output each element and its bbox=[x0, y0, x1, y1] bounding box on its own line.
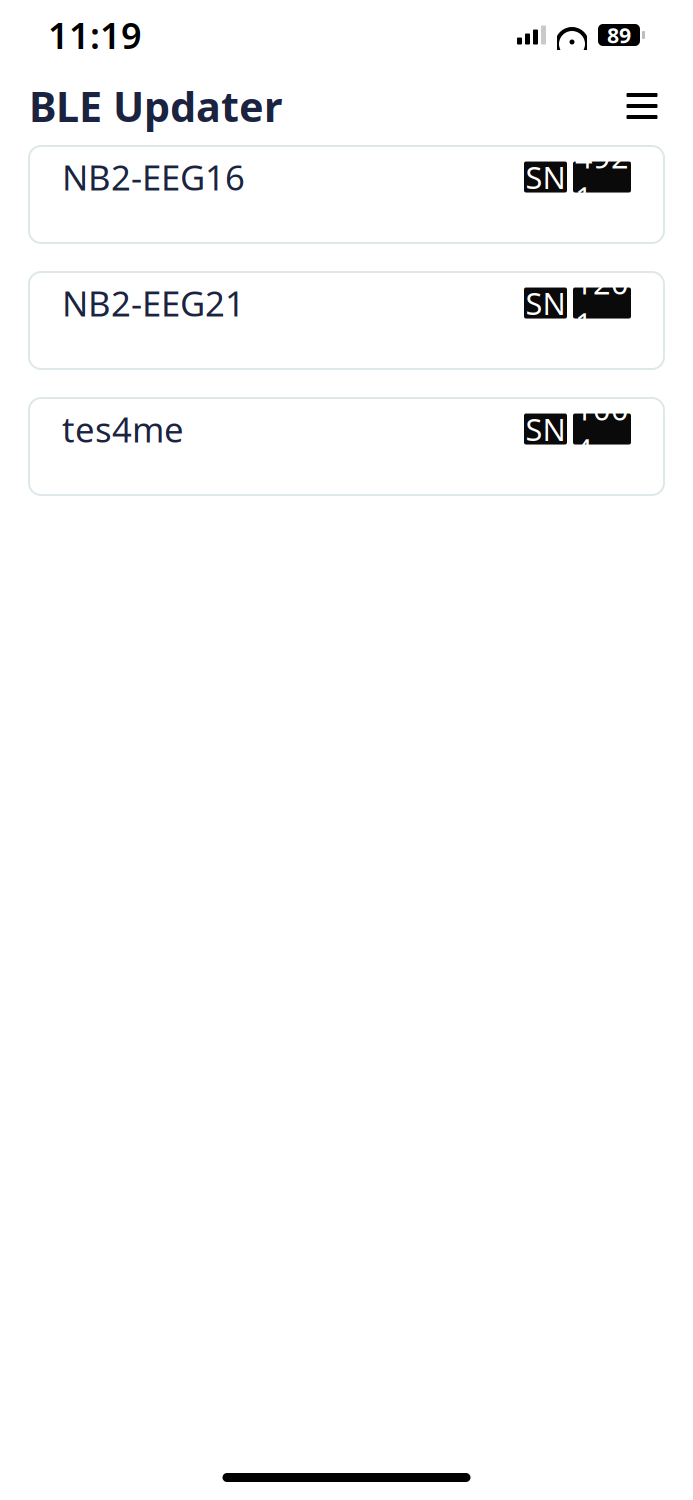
staticText: SN bbox=[525, 283, 565, 323]
staticText: 1201 bbox=[575, 262, 629, 344]
staticText: NB2-EEG21 bbox=[62, 280, 245, 326]
staticText: SN bbox=[525, 409, 565, 449]
button[interactable]: Menu bbox=[620, 84, 664, 128]
staticText: 4921 bbox=[575, 136, 629, 218]
staticText: NB2-EEG16 bbox=[62, 154, 245, 200]
staticText: SN bbox=[525, 157, 565, 197]
staticText: 89 bbox=[607, 21, 631, 49]
staticText: 11:19 bbox=[48, 11, 142, 59]
button[interactable]: NB2-EEG21 bbox=[29, 272, 664, 369]
button[interactable]: tes4me bbox=[29, 398, 664, 495]
staticText: tes4me bbox=[62, 406, 184, 452]
button[interactable]: NB2-EEG16 bbox=[29, 146, 664, 243]
staticText: BLE Updater bbox=[29, 79, 282, 133]
staticText: 1004 bbox=[575, 388, 629, 470]
